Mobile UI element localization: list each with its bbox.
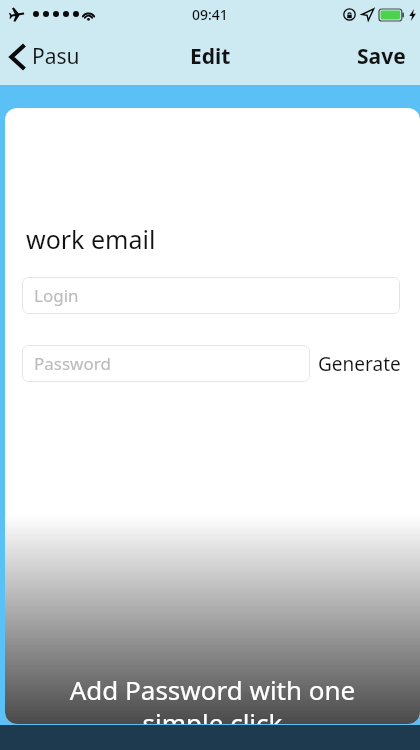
button[interactable]: Pasu (0, 28, 90, 85)
button[interactable]: Generate (310, 345, 409, 382)
staticText: work email (26, 222, 156, 256)
staticText: Add Password with one simple click (5, 672, 420, 724)
staticText: 09:41 (192, 5, 228, 24)
button[interactable]: Edit (176, 28, 245, 85)
staticText: Save (357, 42, 406, 71)
staticText: Edit (190, 42, 231, 71)
staticText: Login (34, 284, 79, 307)
button[interactable]: Save (343, 28, 420, 85)
button[interactable]: Login (22, 277, 400, 314)
staticText: Pasu (32, 42, 80, 71)
staticText: Password (34, 352, 111, 375)
button[interactable]: Password (22, 345, 310, 382)
staticText: Generate (318, 351, 401, 377)
